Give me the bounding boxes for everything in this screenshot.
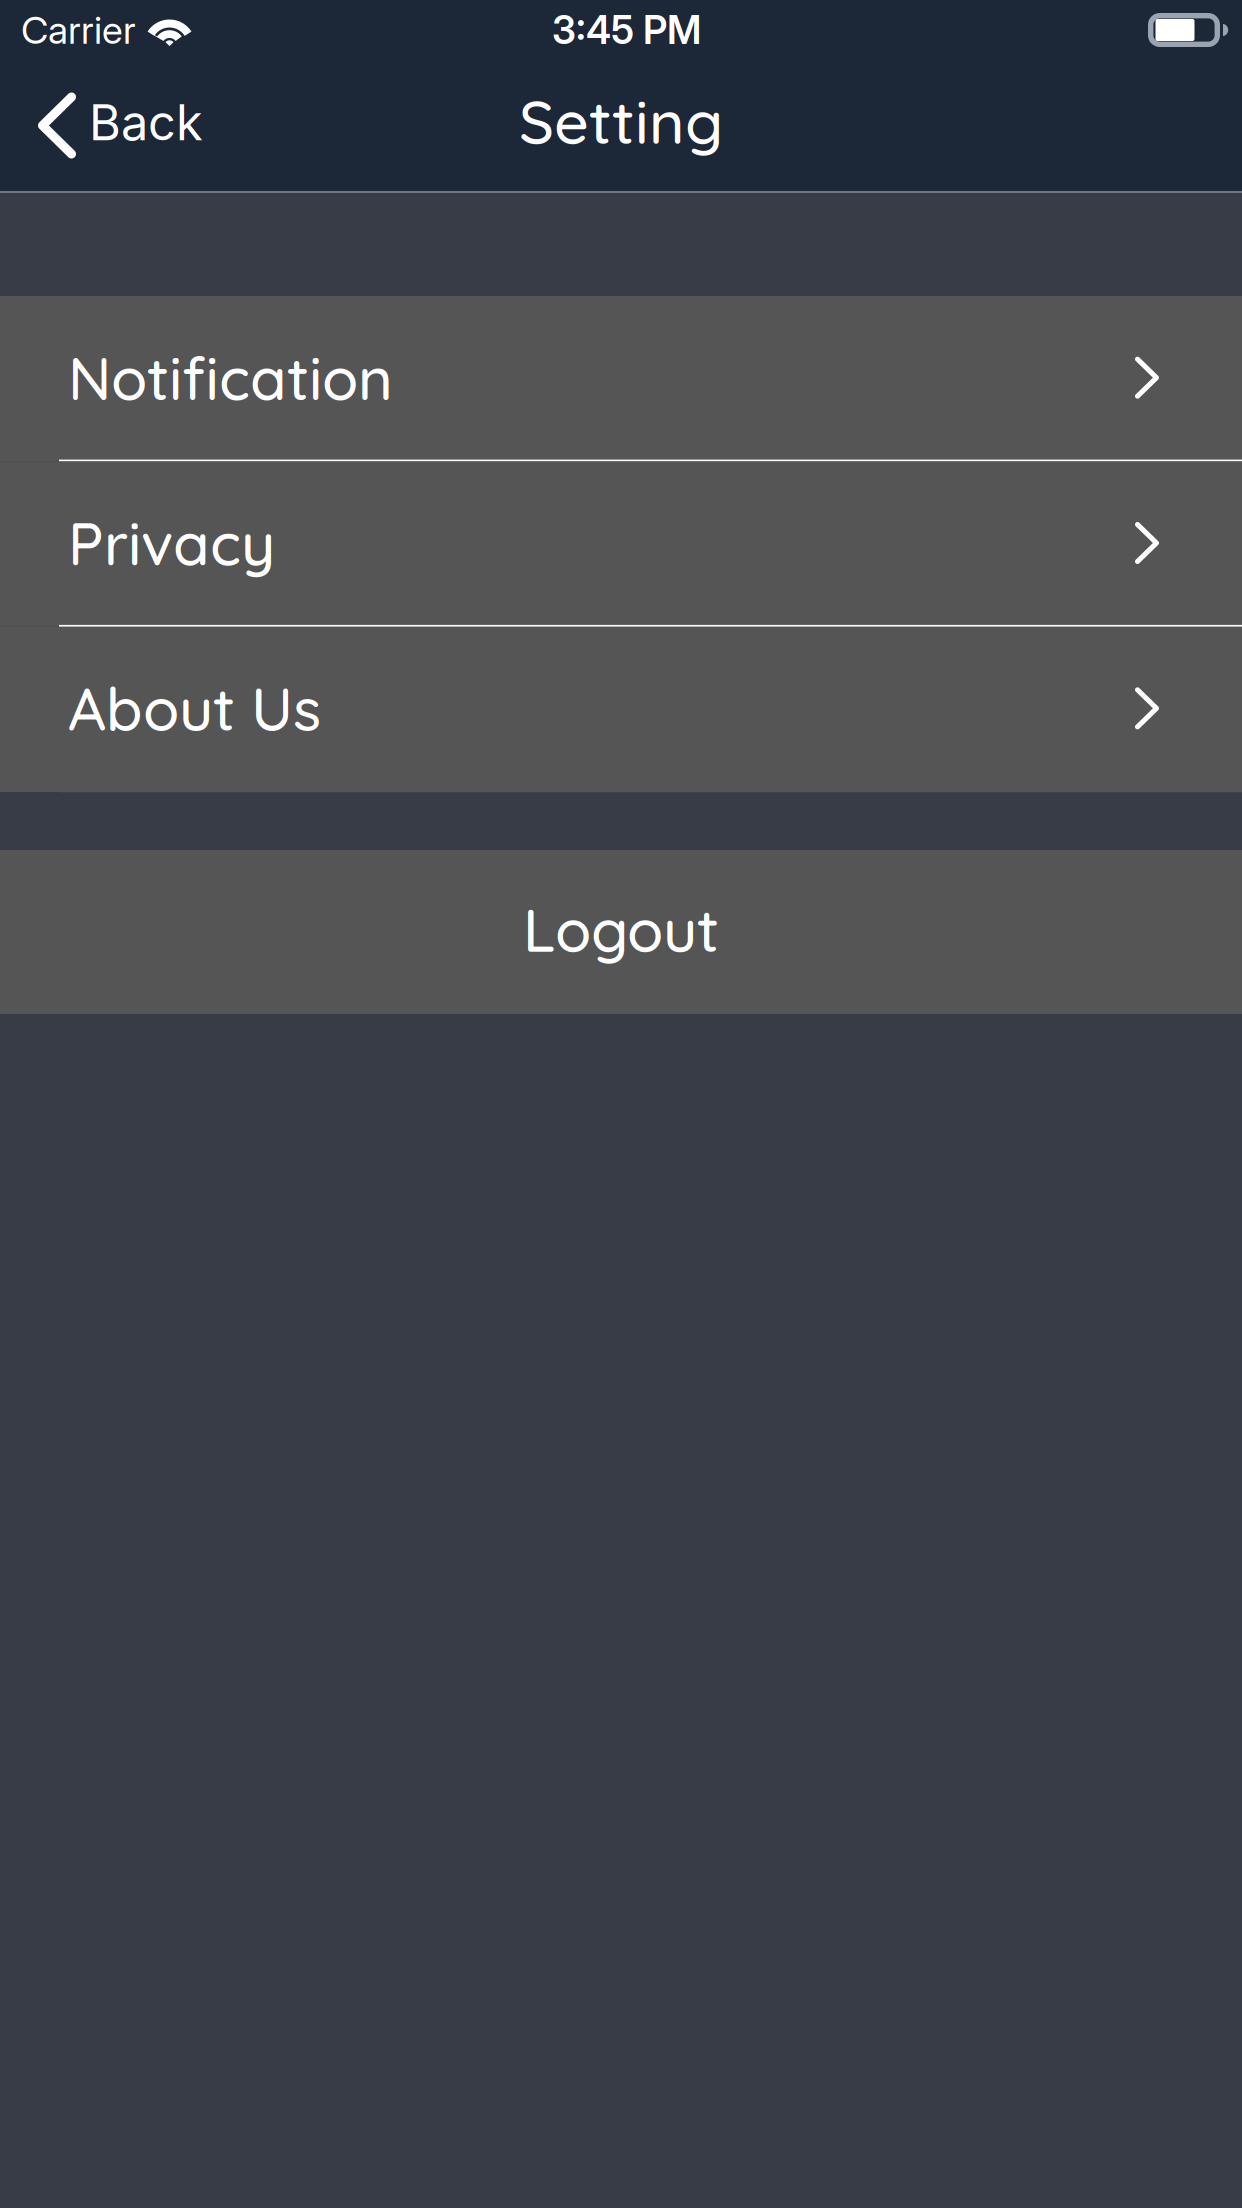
staticText: Logout [523,892,719,967]
button[interactable]: About Us [0,627,1242,792]
staticText: Back [89,93,203,152]
staticText: Carrier [21,7,136,53]
staticText: Privacy [68,506,275,580]
staticText: About Us [68,671,321,745]
staticText: Setting [519,83,723,159]
staticText: Notification [68,341,393,415]
button[interactable]: Notification [0,296,1242,461]
button[interactable]: Logout [0,850,1242,1014]
staticText: 3:45 PM [552,7,701,53]
button[interactable]: Privacy [0,461,1242,627]
button[interactable]: Back [0,60,225,191]
